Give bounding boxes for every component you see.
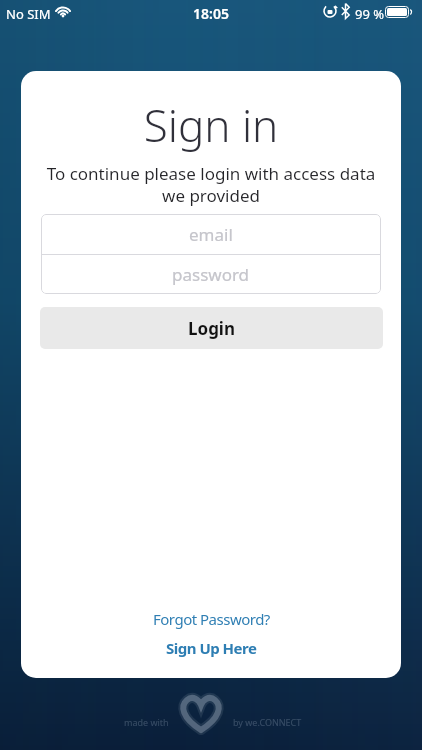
- staticText: Sign Up Here: [166, 638, 257, 658]
- staticText: 18:05: [193, 4, 229, 23]
- staticText: Sign in: [21, 95, 401, 155]
- staticText: password: [172, 263, 250, 286]
- staticText: Login: [188, 317, 236, 340]
- button[interactable]: Login: [40, 307, 383, 349]
- staticText: Forgot Password?: [153, 609, 270, 629]
- staticText: To continue please login with access dat…: [21, 162, 401, 207]
- staticText: No SIM: [6, 5, 51, 23]
- button[interactable]: email: [41, 214, 381, 254]
- staticText: email: [189, 223, 233, 246]
- button[interactable]: password: [41, 255, 381, 294]
- staticText: 99 %: [355, 5, 385, 23]
- staticText: made with: [124, 716, 169, 728]
- button[interactable]: Forgot Password?: [153, 609, 270, 629]
- button[interactable]: Sign Up Here: [166, 638, 257, 658]
- staticText: by we.CONNECT: [233, 716, 302, 728]
